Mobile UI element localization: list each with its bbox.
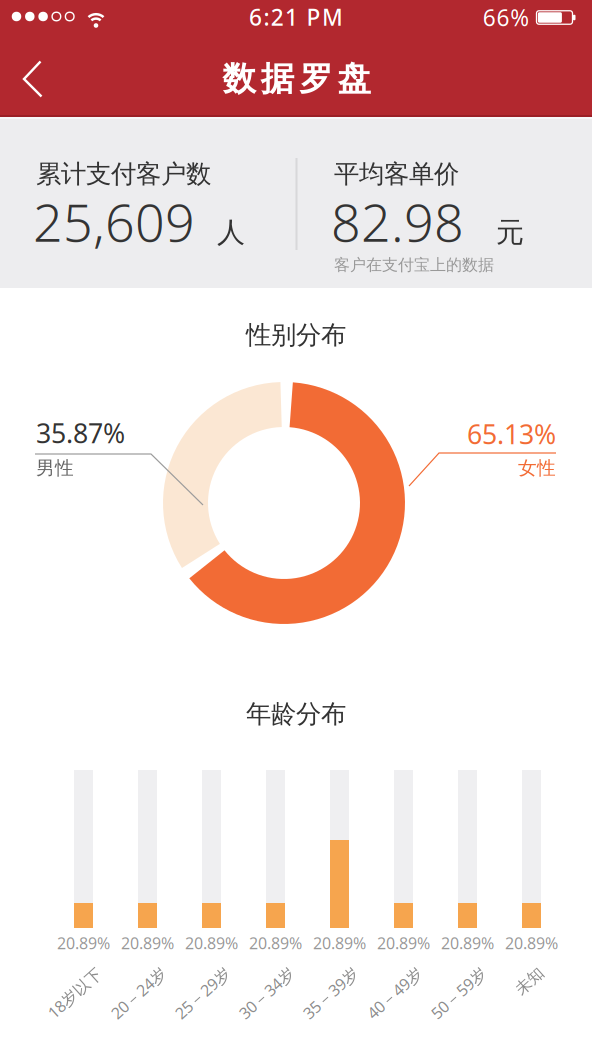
staticText: 20.89% <box>377 932 430 954</box>
staticText: 65.13% <box>467 416 556 452</box>
staticText: 82.98 <box>331 187 464 256</box>
staticText: 人 <box>217 215 245 250</box>
staticText: 20.89% <box>185 932 238 954</box>
staticText: 30－34岁 <box>232 982 300 1004</box>
staticText: 平均客单价 <box>334 158 459 189</box>
staticText: 性别分布 <box>246 319 346 350</box>
staticText: 累计支付客户数 <box>36 158 211 189</box>
staticText: 20.89% <box>313 932 366 954</box>
staticText: 25－29岁 <box>168 982 236 1004</box>
button[interactable]: Back <box>10 49 54 107</box>
staticText: 35－39岁 <box>296 982 364 1004</box>
staticText: 66% <box>483 2 529 32</box>
staticText: 元 <box>496 215 524 250</box>
staticText: 25,609 <box>33 187 195 256</box>
staticText: 未知 <box>513 971 545 991</box>
staticText: 6:21 PM <box>249 2 343 32</box>
staticText: 18岁以下 <box>41 982 107 1004</box>
staticText: 年龄分布 <box>246 698 346 729</box>
staticText: 35.87% <box>36 415 125 451</box>
staticText: 20.89% <box>57 932 110 954</box>
staticText: 20－24岁 <box>104 982 172 1004</box>
staticText: 20.89% <box>441 932 494 954</box>
staticText: 客户在支付宝上的数据 <box>334 255 494 275</box>
staticText: 20.89% <box>505 932 558 954</box>
staticText: 数据罗盘 <box>223 58 370 99</box>
staticText: 20.89% <box>249 932 302 954</box>
staticText: 20.89% <box>121 932 174 954</box>
staticText: 男性 <box>36 456 74 479</box>
staticText: 女性 <box>518 456 556 479</box>
staticText: 50－59岁 <box>424 982 492 1004</box>
staticText: 40－49岁 <box>360 982 428 1004</box>
